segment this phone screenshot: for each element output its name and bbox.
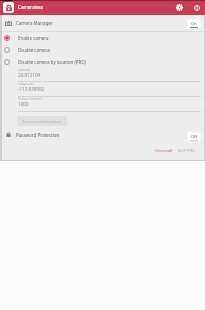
button[interactable]: Camera Manager bbox=[2, 15, 204, 31]
staticText: Camera Manager bbox=[16, 20, 53, 26]
button[interactable]: BUY PRO bbox=[177, 147, 197, 155]
staticText: On bbox=[191, 21, 197, 27]
button[interactable]: Set current location bbox=[17, 116, 67, 126]
staticText: -117.938962 bbox=[18, 86, 45, 92]
staticText: Password Protection bbox=[16, 132, 60, 138]
button[interactable]: Password Protection bbox=[2, 127, 204, 142]
staticText: Enable camera bbox=[18, 35, 49, 41]
staticText: Latitude bbox=[18, 68, 31, 72]
staticText: 1000 bbox=[18, 101, 29, 107]
button[interactable]: Disable camera bbox=[2, 44, 204, 56]
staticText: 20.812104 bbox=[18, 72, 41, 78]
button[interactable]: Info bbox=[190, 1, 203, 14]
staticText: Cameraless bbox=[18, 4, 43, 10]
staticText: Disable camera by location (PRO) bbox=[18, 59, 86, 65]
staticText: Disable camera bbox=[18, 47, 50, 53]
staticText: Set current location bbox=[22, 118, 62, 124]
button[interactable]: Enable camera bbox=[2, 32, 204, 44]
button[interactable]: Uninstall bbox=[154, 147, 173, 155]
button[interactable]: On bbox=[187, 19, 201, 28]
staticText: Longitude bbox=[18, 82, 34, 86]
button[interactable]: Settings bbox=[173, 1, 186, 14]
staticText: Radius (meters) bbox=[18, 97, 42, 101]
button[interactable]: Disable camera by location (PRO) bbox=[2, 56, 204, 68]
staticText: Uninstall bbox=[155, 148, 172, 154]
staticText: Off bbox=[191, 134, 198, 140]
staticText: BUY PRO bbox=[178, 148, 196, 154]
button[interactable]: Off bbox=[187, 132, 201, 141]
